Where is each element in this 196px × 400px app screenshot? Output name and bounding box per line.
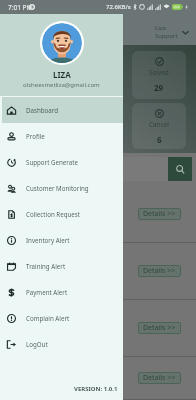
staticText: 72.6KB/s [106,3,131,11]
staticText: Complain Alert [26,314,70,322]
staticText: Details >> [143,266,176,276]
staticText: Pending [25,120,50,129]
button[interactable]: Dashboard [2,97,123,123]
staticText: Profile [26,132,45,140]
staticText: 35 [32,82,42,93]
staticText: Liza [155,24,166,32]
staticText: Support Generate [26,158,78,166]
button[interactable]: Inventory Alert [2,227,123,253]
staticText: Support [155,32,178,40]
staticText: Solved [149,68,169,77]
staticText: Collection Request [26,210,80,218]
button[interactable]: Details >> [138,372,181,384]
button[interactable]: Solved [132,51,186,99]
staticText: Details >> [143,373,176,383]
button[interactable]: Details >> [138,265,181,277]
button[interactable]: Payment Alert [2,279,123,305]
button[interactable]: Training Alert [2,253,123,279]
staticText: 6 [157,134,162,145]
staticText: olsheesmetliza@gmail.com [23,81,100,89]
button[interactable]: Details >> [0,243,196,300]
button[interactable]: Collection Request [2,201,123,227]
button[interactable]: Profile [2,123,123,149]
staticText: Payment Alert [26,288,68,296]
staticText: LIZA [53,69,71,80]
button[interactable]: Customer Monitoring [2,175,123,201]
button[interactable]: Support Generate [2,149,123,175]
button[interactable]: Complain Alert [2,305,123,331]
staticText: VERSION: 1.0.1 [74,385,118,393]
staticText: LogOut [26,340,48,348]
button[interactable]: Details >> [0,357,196,400]
staticText: 29 [154,82,164,93]
button[interactable]: Search [168,157,192,181]
staticText: Training Alert [26,262,66,270]
staticText: Dashboard [26,106,59,114]
staticText: Customer Monitoring [26,184,89,192]
button[interactable]: Cancel [132,103,186,149]
button[interactable]: Details >> [0,300,196,357]
staticText: Details >> [143,323,176,333]
staticText: Search [10,164,33,174]
staticText: 7:01 PM [8,3,33,12]
button[interactable]: Details >> [138,322,181,334]
button[interactable]: Details >> [138,208,181,220]
staticText: 12 [32,134,42,145]
staticText: Inventory Alert [26,236,70,244]
button[interactable]: Details >> [0,186,196,243]
button[interactable]: LogOut [2,331,123,357]
button[interactable]: Pending [10,103,64,149]
staticText: Cancel [149,120,169,129]
button[interactable]: Total [10,51,64,99]
button[interactable]: Expand [181,28,190,37]
staticText: Details >> [143,209,176,219]
